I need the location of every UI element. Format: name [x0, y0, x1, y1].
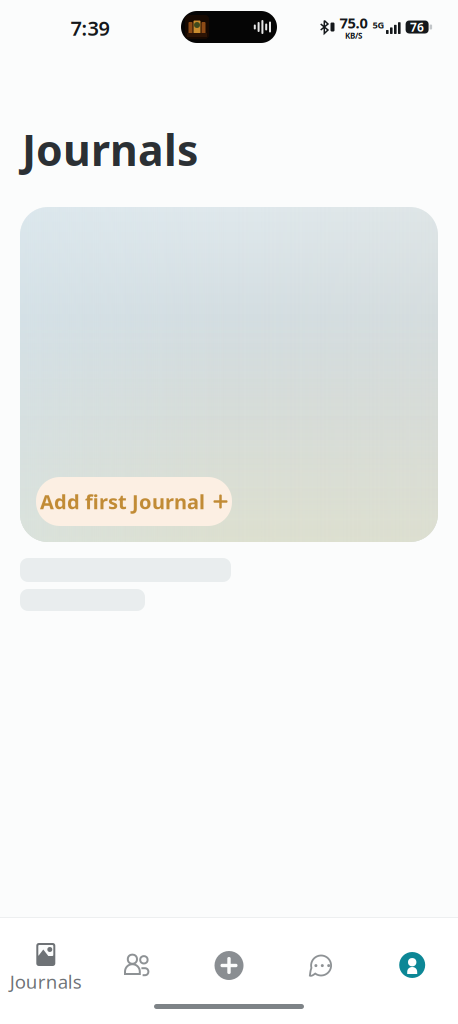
button[interactable]: Add [183, 918, 275, 1005]
staticText: 5G [372, 19, 384, 31]
button[interactable]: Profile [366, 918, 458, 1005]
staticText: KB/S [345, 30, 362, 41]
staticText: Add first Journal [40, 488, 205, 515]
button[interactable]: Messages [275, 918, 366, 1005]
button[interactable]: Friends [92, 918, 183, 1005]
button[interactable]: Add first Journal [36, 477, 232, 526]
staticText: Journals [22, 121, 198, 178]
staticText: 7:39 [70, 15, 109, 41]
button[interactable]: Journals [0, 918, 92, 1005]
staticText: Journals [10, 969, 82, 994]
staticText: 75.0 [339, 13, 367, 32]
staticText: 76 [410, 19, 424, 35]
